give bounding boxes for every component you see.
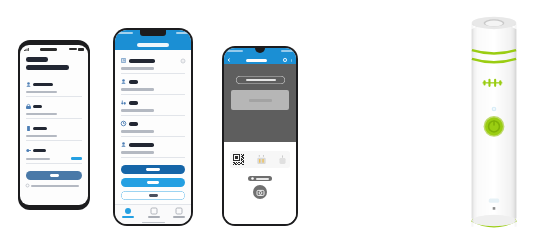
button[interactable]: Home xyxy=(115,208,141,218)
button[interactable] xyxy=(251,177,269,180)
button[interactable]: More options xyxy=(290,59,293,62)
button[interactable]: Shutter xyxy=(253,185,267,199)
button[interactable] xyxy=(121,191,185,200)
button[interactable]: Records xyxy=(141,208,166,218)
button[interactable]: Back xyxy=(227,58,231,62)
button[interactable] xyxy=(121,165,185,174)
button[interactable] xyxy=(26,171,82,180)
button[interactable]: Settings xyxy=(283,58,287,62)
button[interactable] xyxy=(121,178,185,187)
button[interactable]: Settings xyxy=(166,208,191,218)
